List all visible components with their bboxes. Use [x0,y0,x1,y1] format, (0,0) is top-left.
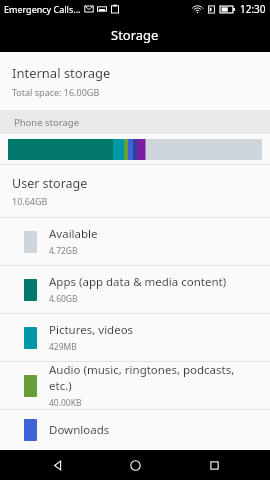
staticText: 40.00KB [49,397,82,409]
staticText: Internal storage [12,64,111,82]
staticText: Total space: 16.00GB [12,86,100,98]
button[interactable]: Available [0,218,270,265]
button[interactable]: Downloads [0,410,270,450]
staticText: Audio (music, ringtones, podcasts, etc.) [49,362,258,394]
staticText: User storage [12,175,88,192]
staticText: 4.72GB [49,245,78,257]
button[interactable]: Apps (app data & media content) [0,266,270,313]
staticText: Available [49,226,98,242]
staticText: 4.60GB [49,293,78,305]
staticText: 429MB [49,341,77,353]
button[interactable]: Home [113,450,157,480]
staticText: Downloads [49,422,110,438]
staticText: Storage [111,26,159,44]
staticText: Apps (app data & media content) [49,274,227,290]
staticText: Emergency Calls... [4,3,81,15]
button[interactable]: Internal storage [0,52,270,110]
button[interactable]: Audio (music, ringtones, podcasts, etc.) [0,362,270,409]
staticText: Pictures, videos [49,322,134,338]
staticText: 10.64GB [12,195,48,207]
button[interactable]: Back [35,450,79,480]
staticText: 12:30 [240,2,266,16]
button[interactable]: Recent apps [192,450,236,480]
staticText: Phone storage [14,116,80,129]
button[interactable]: Pictures, videos [0,314,270,361]
button[interactable]: User storage [0,165,270,217]
